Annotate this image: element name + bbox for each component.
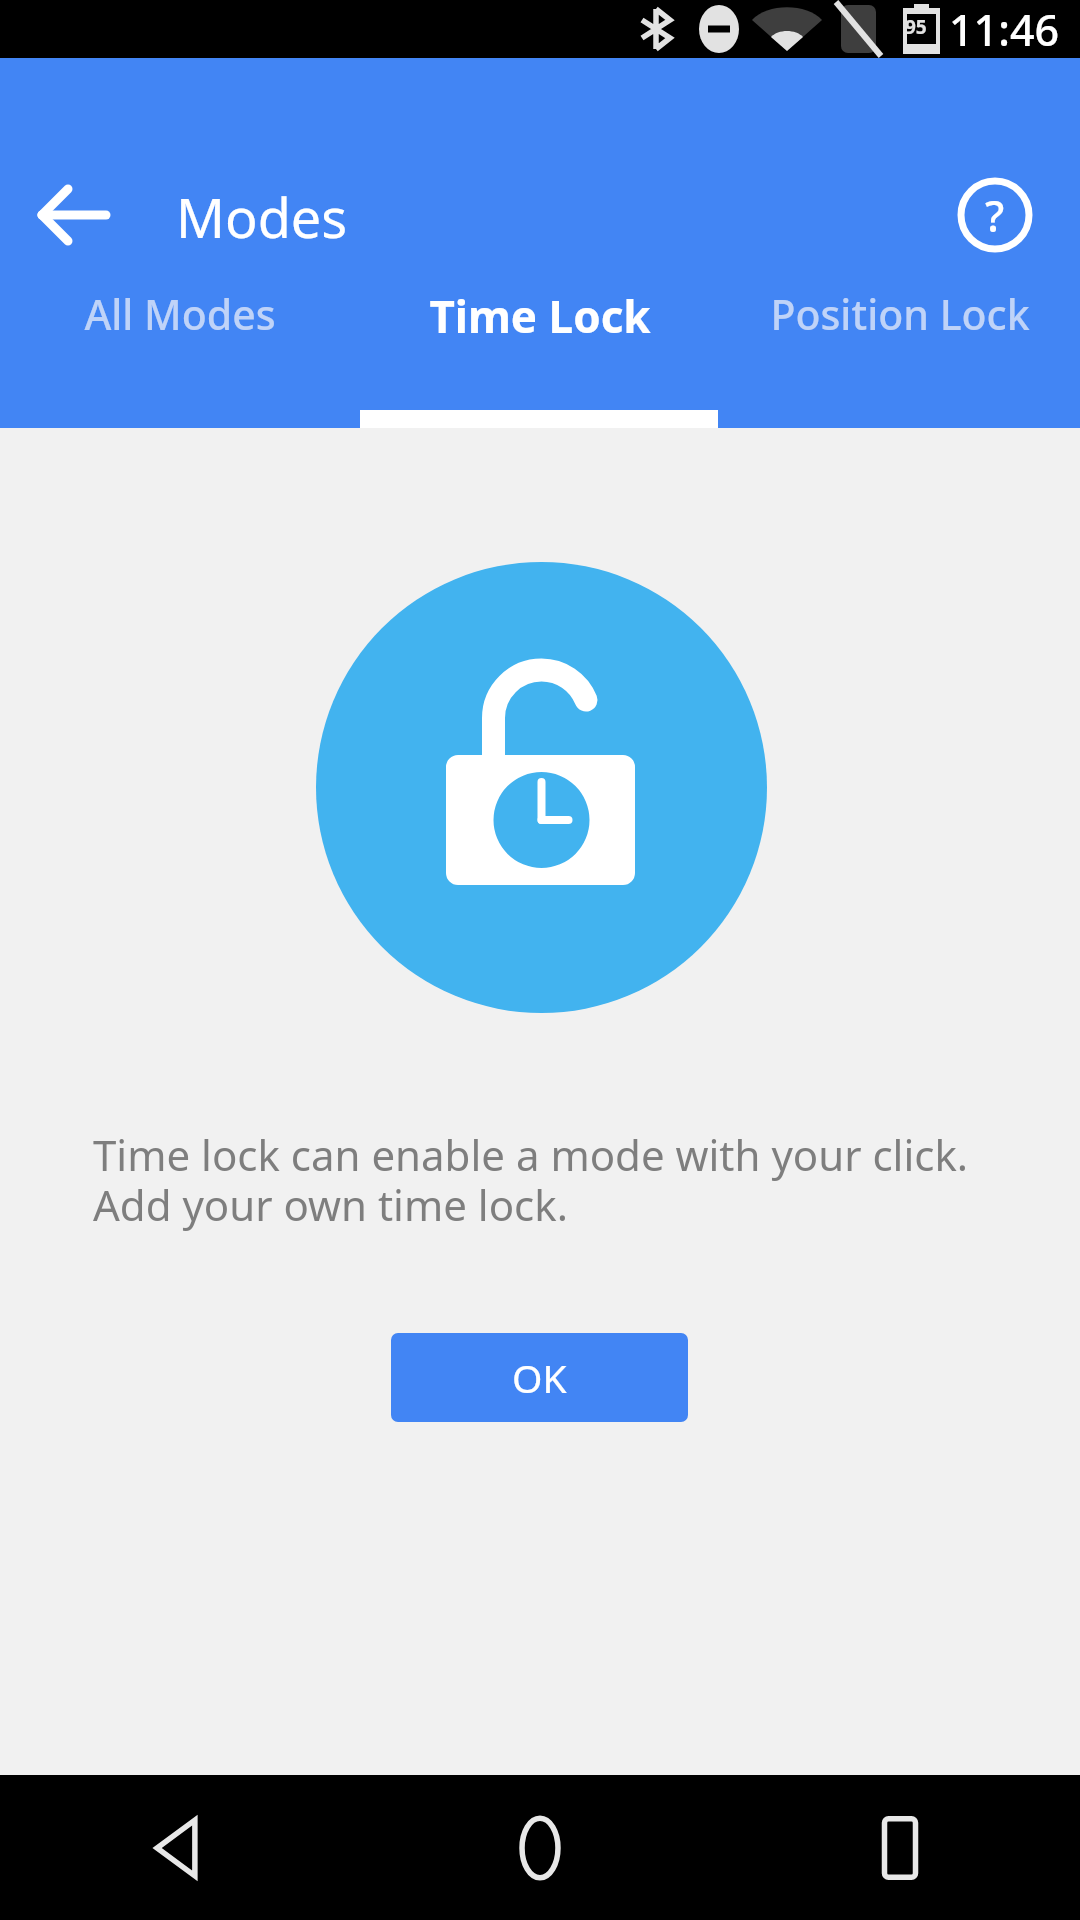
staticText: ?: [985, 186, 1005, 245]
staticText: Modes: [176, 180, 348, 254]
button[interactable]: All Modes: [0, 254, 360, 428]
staticText: Position Lock: [770, 286, 1030, 342]
staticText: 11:46: [949, 0, 1060, 58]
button[interactable]: Help: [947, 167, 1043, 263]
staticText: 95: [905, 14, 927, 40]
button[interactable]: Position Lock: [720, 254, 1080, 428]
button[interactable]: OK: [391, 1333, 688, 1422]
staticText: Time lock can enable a mode with your cl…: [93, 1126, 969, 1234]
staticText: All Modes: [84, 286, 276, 342]
staticText: Time Lock: [429, 286, 651, 346]
button[interactable]: Back: [0, 1775, 360, 1920]
staticText: OK: [512, 1351, 567, 1404]
button[interactable]: Back: [26, 167, 122, 263]
button[interactable]: Recent apps: [720, 1775, 1080, 1920]
button[interactable]: Home: [360, 1775, 720, 1920]
button[interactable]: Time Lock: [360, 254, 720, 428]
